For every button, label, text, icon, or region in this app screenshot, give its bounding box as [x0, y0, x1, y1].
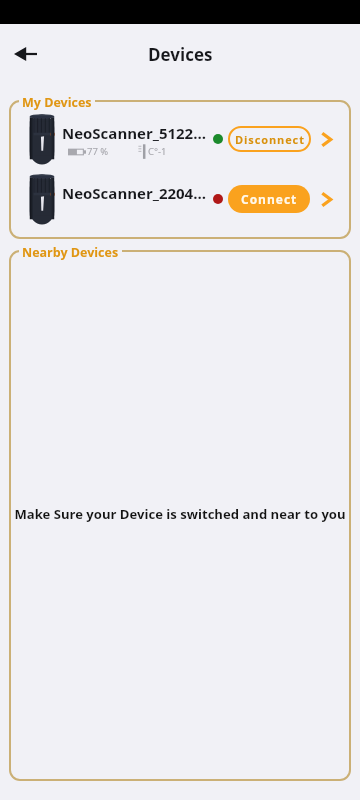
- staticText: NeoScanner_2204...: [62, 183, 207, 203]
- button[interactable]: Connect: [228, 185, 310, 213]
- staticText: Devices: [148, 43, 213, 66]
- button[interactable]: NeoScanner_2204...: [9, 169, 351, 229]
- staticText: Nearby Devices: [22, 244, 119, 261]
- staticText: Disconnect: [235, 132, 305, 147]
- button[interactable]: Details: [314, 127, 338, 151]
- button[interactable]: Details: [314, 187, 338, 211]
- staticText: Make Sure your Device is switched and ne…: [9, 505, 351, 523]
- staticText: C°-1: [148, 145, 167, 158]
- button[interactable]: Back: [5, 34, 45, 74]
- staticText: NeoScanner_5122...: [62, 123, 207, 143]
- button[interactable]: Disconnect: [228, 126, 311, 152]
- staticText: My Devices: [22, 94, 92, 111]
- staticText: Connect: [241, 191, 298, 207]
- staticText: 77 %: [87, 145, 109, 158]
- button[interactable]: NeoScanner_5122...: [9, 109, 351, 169]
